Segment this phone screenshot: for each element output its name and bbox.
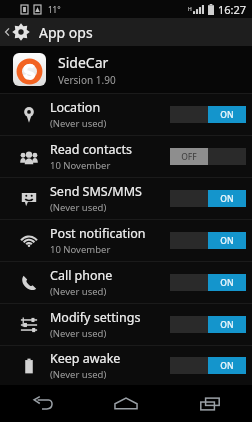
button[interactable]: Switch on — [170, 232, 246, 249]
staticText: Location — [50, 99, 101, 116]
staticText: Post notification — [50, 225, 146, 242]
staticText: ON — [220, 109, 234, 121]
staticText: 11° — [48, 4, 61, 15]
button[interactable]: Switch on — [170, 316, 246, 333]
staticText: Modify settings — [50, 309, 141, 326]
button[interactable]: Location — [0, 94, 252, 135]
staticText: ON — [220, 319, 234, 331]
button[interactable]: Recent apps — [168, 385, 252, 422]
staticText: Version 1.90 — [58, 73, 116, 87]
button[interactable]: Post notification — [0, 220, 252, 261]
staticText: 16:27 — [218, 2, 247, 17]
staticText: (Never used) — [50, 285, 107, 298]
button[interactable]: Modify settings — [0, 304, 252, 345]
button[interactable]: Keep awake — [0, 346, 252, 385]
staticText: 10 November — [50, 243, 111, 256]
button[interactable]: Back — [0, 18, 252, 46]
staticText: (Never used) — [50, 327, 107, 340]
button[interactable]: Home — [84, 385, 168, 422]
staticText: ON — [220, 193, 234, 205]
button[interactable]: Switch on — [170, 357, 246, 374]
staticText: ON — [220, 277, 234, 289]
button[interactable]: Switch on — [170, 190, 246, 207]
staticText: OFF — [181, 151, 197, 163]
staticText: 10 November — [50, 159, 111, 172]
staticText: (Never used) — [50, 201, 107, 214]
staticText: (Never used) — [50, 117, 107, 130]
button[interactable]: Switch on — [170, 274, 246, 291]
staticText: ON — [220, 235, 234, 247]
button[interactable]: Read contacts — [0, 136, 252, 177]
staticText: Keep awake — [50, 350, 121, 367]
button[interactable]: Switch on — [170, 106, 246, 123]
button[interactable]: Send SMS/MMS — [0, 178, 252, 219]
staticText: Send SMS/MMS — [50, 183, 142, 200]
button[interactable]: Call phone — [0, 262, 252, 303]
staticText: App ops — [39, 23, 93, 42]
staticText: (Never used) — [50, 368, 107, 381]
other: Back — [3, 25, 11, 39]
staticText: H — [188, 6, 192, 13]
staticText: SideCar — [58, 53, 109, 72]
button[interactable]: Back — [0, 385, 84, 422]
staticText: ON — [220, 360, 234, 372]
staticText: Call phone — [50, 267, 113, 284]
staticText: Read contacts — [50, 141, 133, 158]
button[interactable]: Switch off — [170, 148, 246, 165]
button[interactable]: SideCar — [0, 46, 252, 93]
